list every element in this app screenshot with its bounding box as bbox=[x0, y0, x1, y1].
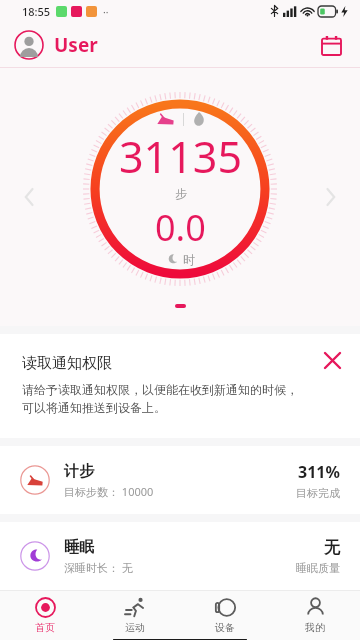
staticText: 311% bbox=[298, 461, 340, 483]
staticText: 0.0 bbox=[155, 203, 206, 252]
button[interactable]: Calendar bbox=[316, 30, 346, 60]
button[interactable]: 读取通知权限 bbox=[0, 334, 360, 438]
button[interactable]: 睡眠 bbox=[20, 522, 340, 590]
staticText: 目标完成 bbox=[296, 486, 340, 500]
staticText: 18:55 bbox=[22, 4, 51, 19]
button[interactable]: 设备 bbox=[180, 591, 270, 639]
staticText: 设备 bbox=[215, 621, 235, 634]
staticText: 请给予读取通知权限，以便能在收到新通知的时候，可以将通知推送到设备上。 bbox=[22, 382, 306, 416]
staticText: 我的 bbox=[305, 621, 325, 634]
staticText: 31135 bbox=[119, 127, 242, 186]
button[interactable]: 计步 bbox=[20, 446, 340, 514]
button[interactable]: Previous bbox=[12, 180, 46, 214]
button[interactable]: User bbox=[14, 30, 98, 60]
button[interactable]: Next bbox=[314, 180, 348, 214]
staticText: 首页 bbox=[35, 621, 55, 634]
button[interactable]: 运动 bbox=[90, 591, 180, 639]
staticText: ·· bbox=[103, 5, 109, 19]
staticText: 运动 bbox=[125, 621, 145, 634]
button[interactable]: 首页 bbox=[0, 591, 90, 639]
staticText: 计步 bbox=[64, 462, 94, 481]
staticText: User bbox=[54, 32, 98, 58]
button[interactable]: 我的 bbox=[270, 591, 360, 639]
button[interactable]: Close bbox=[318, 346, 346, 374]
staticText: 目标步数： 10000 bbox=[64, 484, 154, 499]
staticText: 无 bbox=[324, 538, 340, 558]
staticText: 睡眠质量 bbox=[296, 561, 340, 575]
staticText: 睡眠 bbox=[64, 538, 94, 557]
staticText: 时 bbox=[183, 252, 195, 267]
staticText: 读取通知权限 bbox=[22, 354, 112, 373]
staticText: 深睡时长： 无 bbox=[64, 560, 133, 575]
staticText: 步 bbox=[175, 186, 187, 201]
